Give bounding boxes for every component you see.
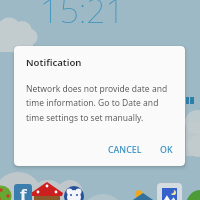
button[interactable]: CANCEL	[103, 141, 147, 159]
button[interactable]: Facebook	[14, 184, 32, 200]
staticText: 15:21	[40, 0, 125, 33]
staticText: Network does not provide date and time i…	[26, 83, 172, 124]
button[interactable]: Gallery	[157, 183, 182, 200]
staticText: OK	[160, 144, 173, 156]
staticText: Notification	[26, 56, 82, 69]
button[interactable]: OK	[155, 141, 178, 159]
staticText: f	[20, 184, 27, 200]
staticText: CANCEL	[108, 144, 142, 156]
